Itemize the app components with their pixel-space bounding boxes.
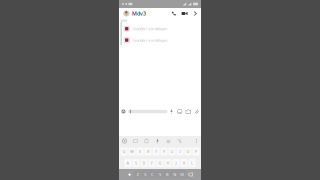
button[interactable]: N (171, 170, 178, 179)
button[interactable]: Sticker (175, 106, 184, 117)
button[interactable]: Voice call (168, 8, 179, 19)
staticText: C (151, 172, 154, 177)
button[interactable]: Camera (184, 106, 192, 117)
staticText: K (183, 160, 185, 166)
button[interactable]: More options (190, 8, 201, 19)
button[interactable]: Shift (125, 169, 134, 180)
staticText: N (173, 172, 176, 177)
button[interactable]: H (164, 159, 172, 167)
staticText: M (180, 172, 184, 177)
staticText: A (126, 160, 129, 166)
button[interactable]: Attach file (192, 106, 201, 117)
staticText: H (166, 160, 169, 166)
button[interactable]: Translate (174, 136, 185, 146)
button[interactable]: Mdv3 contact info (119, 8, 146, 19)
button[interactable]: B (164, 170, 171, 179)
staticText: Gonderi icin tiklayin (133, 26, 167, 31)
staticText: R (147, 149, 149, 154)
button[interactable]: Dictate (152, 136, 163, 146)
staticText: L (191, 160, 193, 166)
staticText: Q (122, 149, 125, 154)
button[interactable]: Delete (186, 169, 195, 180)
button[interactable]: S (132, 159, 140, 167)
staticText: U (170, 149, 173, 154)
staticText: P (195, 149, 197, 154)
button[interactable]: Video call (179, 8, 190, 19)
button[interactable]: P (192, 147, 200, 156)
button[interactable]: F (148, 159, 156, 167)
staticText: X (144, 172, 146, 177)
button[interactable]: Clipboard (141, 136, 152, 146)
button[interactable]: D (140, 159, 148, 167)
button[interactable]: K (180, 159, 188, 167)
button[interactable]: I (176, 147, 184, 156)
button[interactable]: Q (120, 147, 128, 156)
staticText: T (155, 149, 157, 154)
button[interactable]: Gonderi icin tiklayin (119, 37, 201, 44)
button[interactable]: Gonderi icin tiklayin (119, 25, 201, 32)
button[interactable]: L (188, 159, 196, 167)
button[interactable]: Text settings (163, 136, 174, 146)
staticText: E (139, 149, 141, 154)
button[interactable]: A (124, 159, 132, 167)
staticText: O (186, 149, 189, 154)
button[interactable]: Emoji (119, 106, 128, 117)
staticText: G (158, 160, 161, 166)
staticText: B (166, 172, 169, 177)
button[interactable]: E (136, 147, 144, 156)
button[interactable]: G (156, 159, 164, 167)
staticText: Y (163, 149, 165, 154)
button[interactable]: More (192, 136, 201, 146)
button[interactable]: V (156, 170, 164, 179)
button[interactable]: Y (160, 147, 168, 156)
button[interactable]: O (184, 147, 192, 156)
staticText: Mdv3 (132, 10, 146, 17)
button[interactable]: U (168, 147, 176, 156)
button[interactable]: X (141, 170, 149, 179)
button[interactable]: M (178, 170, 186, 179)
button[interactable]: GIF (130, 136, 141, 146)
button[interactable]: C (149, 170, 156, 179)
button[interactable]: Voice message (167, 106, 175, 117)
staticText: V (159, 172, 161, 177)
button[interactable]: T (152, 147, 160, 156)
button[interactable]: R (144, 147, 152, 156)
button[interactable]: Z (134, 170, 141, 179)
staticText: D (142, 160, 145, 166)
staticText: Z (137, 172, 139, 177)
staticText: Gonderi icin tiklayin (133, 37, 167, 43)
button[interactable]: J (172, 159, 180, 167)
button[interactable]: W (128, 147, 136, 156)
staticText: F (151, 160, 153, 166)
button[interactable]: Keyboard settings (119, 136, 130, 146)
staticText: S (135, 160, 137, 166)
staticText: W (130, 149, 134, 154)
